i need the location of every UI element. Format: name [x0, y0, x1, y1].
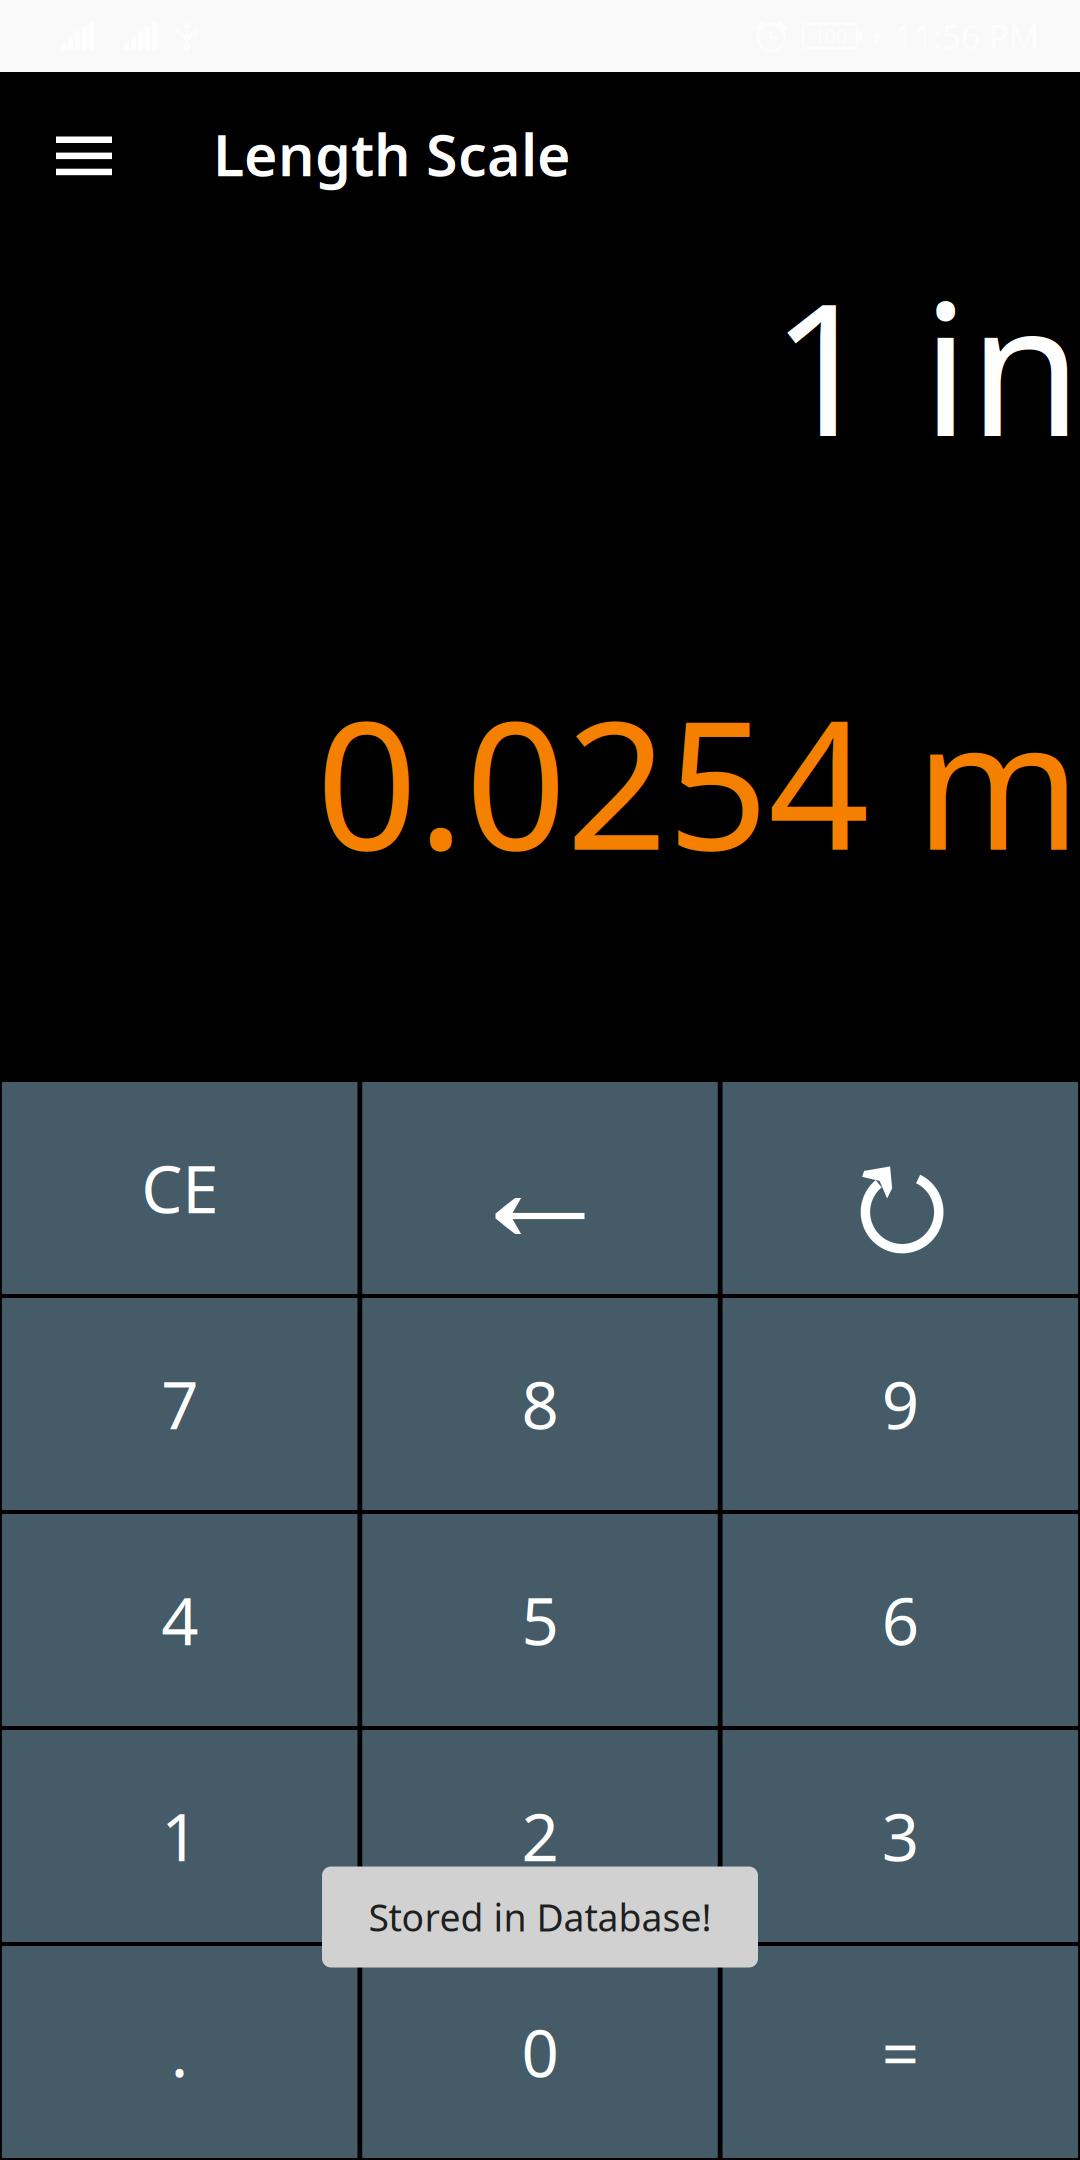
staticText: 0.0254 m — [316, 663, 1080, 899]
staticText: 9 — [882, 1361, 919, 1447]
staticText: . — [171, 2009, 189, 2095]
staticText: Length Scale — [213, 116, 571, 192]
button[interactable]: 6 — [723, 1514, 1078, 1726]
button[interactable]: 7 — [2, 1298, 357, 1510]
button[interactable]: 1 — [2, 1730, 357, 1942]
button[interactable]: Backspace — [362, 1082, 718, 1294]
button[interactable]: Reset — [723, 1082, 1078, 1294]
button[interactable]: . — [2, 1946, 357, 2158]
staticText: 8 — [521, 1361, 558, 1447]
staticText: 4 — [161, 1577, 198, 1663]
button[interactable]: 5 — [362, 1514, 718, 1726]
staticText: 7 — [161, 1361, 198, 1447]
button[interactable]: 8 — [362, 1298, 718, 1510]
button[interactable]: 2 — [362, 1730, 718, 1942]
staticText: 0 — [521, 2009, 558, 2095]
button[interactable]: 0 — [362, 1946, 718, 2158]
staticText: CE — [141, 1145, 218, 1231]
staticText: = — [882, 2009, 919, 2095]
staticText: 1 in — [771, 244, 1080, 486]
staticText: 1 — [161, 1793, 198, 1879]
staticText: Stored in Database! — [368, 1892, 711, 1942]
staticText: 5 — [521, 1577, 558, 1663]
button[interactable]: = — [723, 1946, 1078, 2158]
staticText: 2 — [521, 1793, 558, 1879]
staticText: 6 — [882, 1577, 919, 1663]
button[interactable]: 3 — [723, 1730, 1078, 1942]
button[interactable]: Menu — [28, 101, 140, 211]
staticText: 3 — [882, 1793, 919, 1879]
button[interactable]: 9 — [723, 1298, 1078, 1510]
button[interactable]: 4 — [2, 1514, 357, 1726]
button[interactable]: CE — [2, 1082, 357, 1294]
